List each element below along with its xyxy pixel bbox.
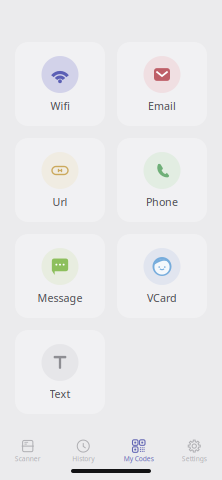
button[interactable]: Settings (166, 436, 222, 463)
button[interactable]: Wifi (15, 42, 105, 126)
button[interactable]: VCard (117, 234, 207, 318)
button[interactable]: History (55, 436, 111, 463)
staticText: Phone (146, 195, 178, 209)
staticText: Text (49, 387, 70, 401)
staticText: VCard (147, 291, 177, 305)
button[interactable]: Phone (117, 138, 207, 222)
button[interactable]: Text (15, 330, 105, 414)
button[interactable]: Url (15, 138, 105, 222)
button[interactable]: Message (15, 234, 105, 318)
button[interactable]: Scanner (0, 436, 55, 463)
staticText: My Codes (124, 454, 154, 463)
button[interactable]: My Codes (111, 436, 166, 463)
staticText: Url (52, 195, 67, 209)
staticText: Email (148, 99, 176, 113)
button[interactable]: Email (117, 42, 207, 126)
staticText: Settings (182, 454, 207, 463)
staticText: Message (37, 291, 82, 305)
staticText: Scanner (15, 454, 41, 463)
staticText: Wifi (50, 99, 69, 113)
staticText: History (72, 454, 94, 463)
